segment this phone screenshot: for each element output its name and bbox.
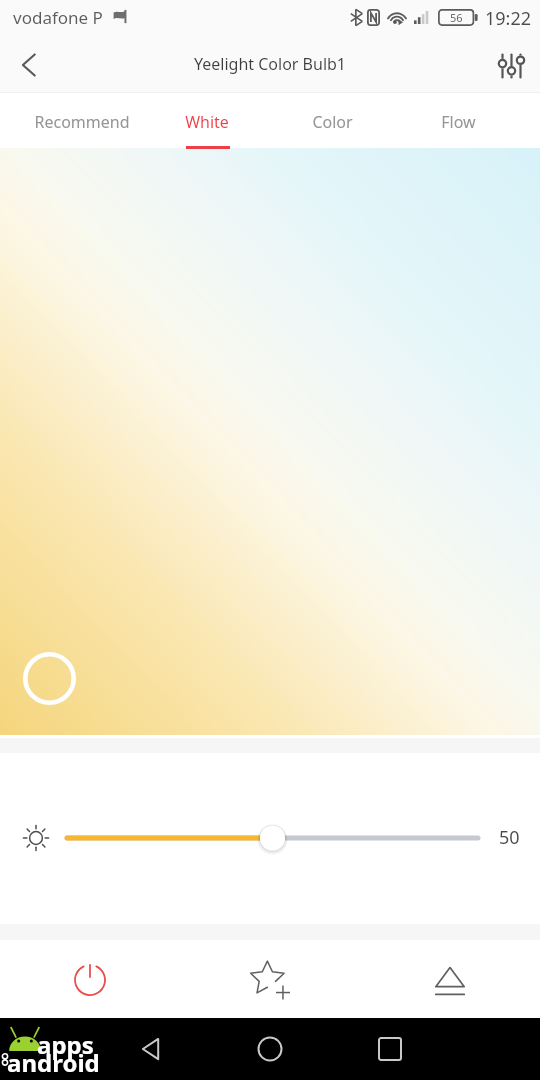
button[interactable]: Settings <box>484 37 538 95</box>
button[interactable]: Home <box>240 1019 300 1079</box>
button[interactable]: Color <box>269 93 395 148</box>
staticText: Color <box>312 111 353 133</box>
button[interactable]: Back <box>121 1019 181 1079</box>
staticText: android <box>7 1046 100 1079</box>
staticText: White <box>185 111 229 133</box>
button[interactable]: Recommend <box>19 93 144 148</box>
button[interactable]: Eject <box>420 950 480 1010</box>
staticText: Recommend <box>34 111 130 133</box>
button[interactable]: Power <box>60 950 120 1010</box>
button[interactable]: Brightness <box>14 816 58 860</box>
staticText: Yeelight Color Bulb1 <box>194 53 347 75</box>
button[interactable] <box>47 818 498 858</box>
staticText: apps <box>37 1028 94 1061</box>
button[interactable]: Back <box>4 36 54 94</box>
staticText: Flow <box>441 111 476 133</box>
staticText: 50 <box>499 825 520 850</box>
button[interactable]: Recents <box>360 1019 420 1079</box>
button[interactable]: Add to favourites <box>240 950 300 1010</box>
staticText: 56 <box>450 10 463 25</box>
staticText: vodafone P <box>13 6 103 29</box>
button[interactable]: Selected colour <box>23 652 76 705</box>
button[interactable]: Flow <box>395 93 521 148</box>
button[interactable]: White <box>144 93 269 148</box>
staticText: 19:22 <box>485 6 532 31</box>
